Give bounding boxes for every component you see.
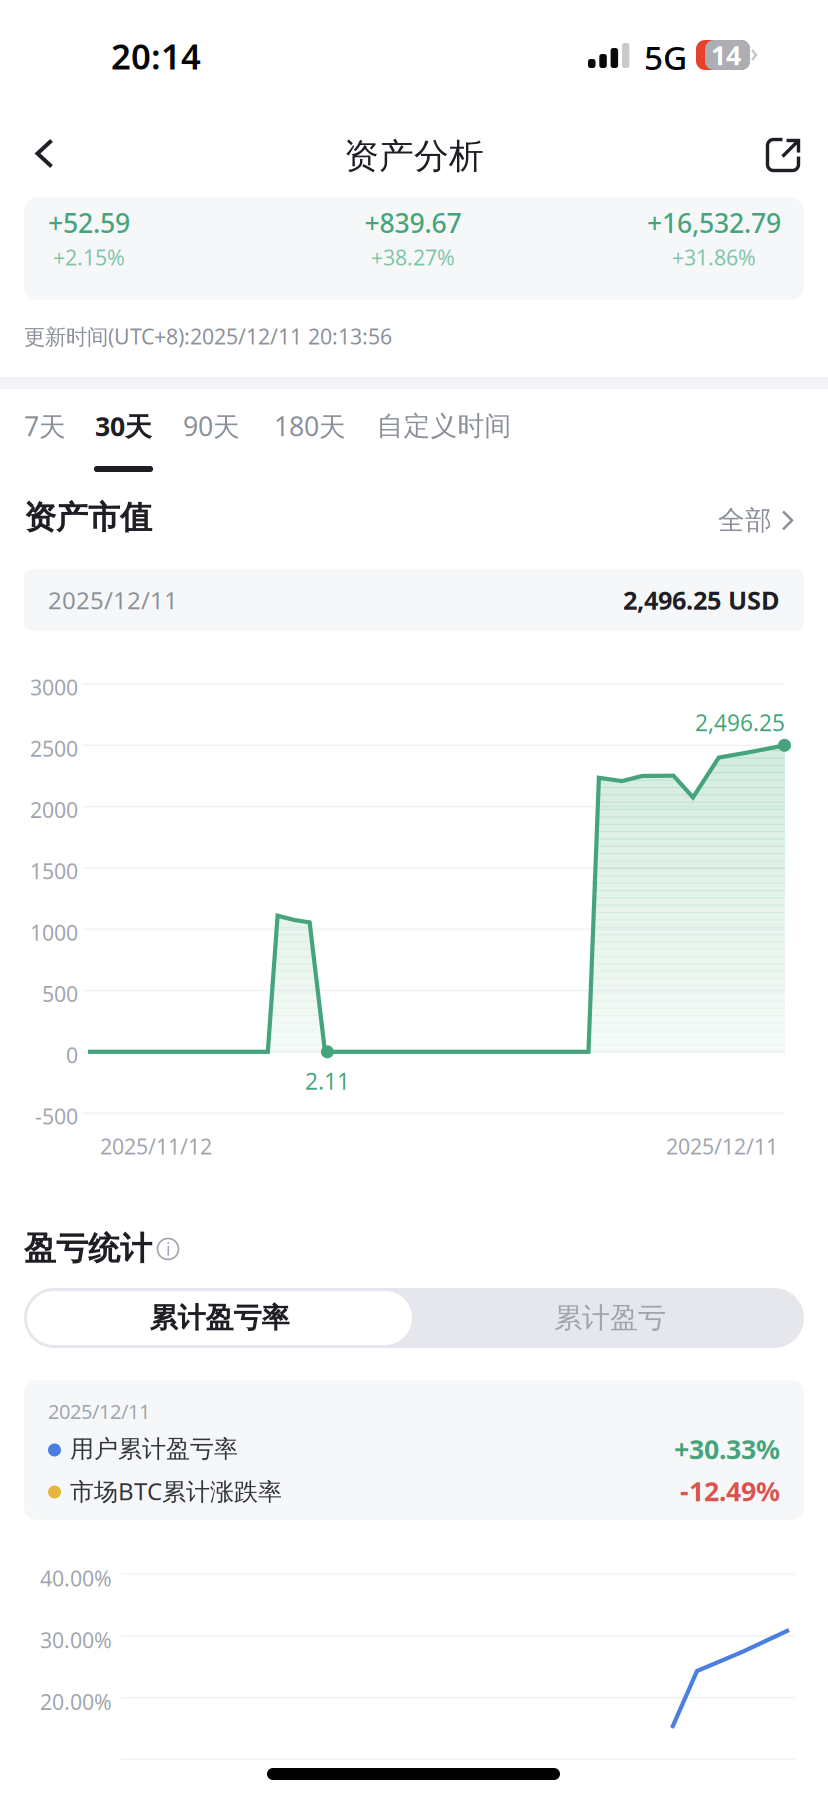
- button[interactable]: 90天: [121, 397, 301, 473]
- staticText: +30.33%: [674, 1431, 780, 1467]
- staticText: 90天: [183, 408, 240, 444]
- staticText: 2500: [30, 734, 78, 763]
- staticText: -500: [35, 1102, 78, 1130]
- staticText: 1000: [30, 918, 78, 946]
- staticText: 自定义时间: [376, 410, 511, 442]
- button[interactable]: 累计盈亏率: [27, 1291, 412, 1345]
- staticText: 180天: [274, 408, 346, 444]
- staticText: +16,532.79: [647, 205, 781, 240]
- staticText: 0: [66, 1041, 78, 1069]
- staticText: 2,496.25 USD: [623, 583, 780, 617]
- staticText: 累计盈亏: [554, 1301, 666, 1335]
- button[interactable]: 180天: [220, 397, 400, 473]
- staticText: 3000: [30, 673, 78, 701]
- staticText: 更新时间(UTC+8):2025/12/11 20:13:56: [24, 322, 392, 350]
- staticText: 2000: [30, 796, 78, 824]
- staticText: 市场BTC累计涨跌率: [70, 1475, 282, 1507]
- staticText: 30天: [95, 408, 152, 444]
- staticText: +38.27%: [371, 243, 455, 271]
- button[interactable]: 累计盈亏: [416, 1288, 804, 1348]
- staticText: -12.49%: [680, 1473, 780, 1509]
- staticText: 全部: [718, 504, 772, 537]
- staticText: 资产分析: [344, 135, 484, 178]
- button[interactable]: 自定义时间: [354, 397, 534, 473]
- staticText: 2025/12/11: [48, 1398, 150, 1425]
- button[interactable]: Back: [14, 123, 76, 185]
- staticText: 5G: [644, 35, 687, 79]
- staticText: 用户累计盈亏率: [70, 1434, 238, 1464]
- staticText: 2025/12/11: [666, 1132, 778, 1160]
- button[interactable]: Share: [752, 124, 814, 186]
- staticText: 2025/12/11: [48, 584, 178, 616]
- button[interactable]: 30天: [33, 397, 213, 473]
- staticText: 盈亏统计: [24, 1229, 152, 1268]
- staticText: 14: [711, 37, 741, 73]
- staticText: 20.00%: [40, 1688, 112, 1716]
- staticText: +839.67: [364, 205, 461, 240]
- staticText: +31.86%: [672, 243, 756, 271]
- staticText: i: [166, 1237, 170, 1260]
- staticText: 累计盈亏率: [149, 1301, 289, 1335]
- staticText: 资产市值: [24, 498, 152, 537]
- staticText: 1500: [30, 857, 78, 885]
- button[interactable]: 7天: [0, 397, 135, 473]
- staticText: 2.11: [305, 1066, 350, 1096]
- button[interactable]: 全部: [712, 494, 800, 547]
- staticText: 20:14: [111, 33, 201, 79]
- staticText: 500: [42, 979, 78, 1008]
- staticText: 7天: [24, 408, 66, 444]
- staticText: 30.00%: [40, 1626, 112, 1654]
- staticText: +2.15%: [53, 243, 125, 271]
- staticText: 2025/11/12: [100, 1132, 212, 1160]
- staticText: 2,496.25: [695, 707, 785, 737]
- staticText: 40.00%: [40, 1564, 112, 1592]
- staticText: +52.59: [48, 205, 130, 240]
